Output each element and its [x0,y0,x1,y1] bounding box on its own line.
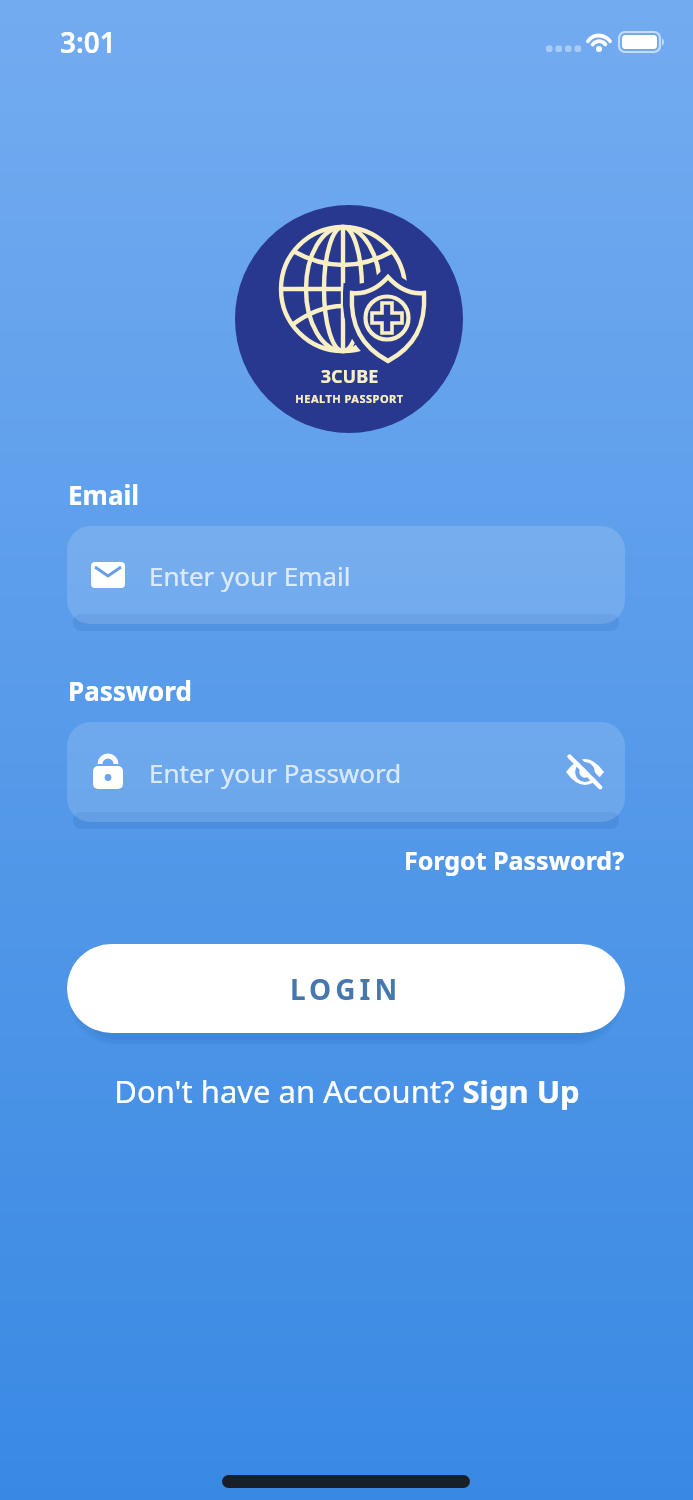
button[interactable]: LOGIN [67,944,625,1033]
staticText: Password [68,673,192,708]
button[interactable]: Don't have an Account? Sign Up [0,1070,693,1112]
staticText: 3CUBE [3,364,693,389]
button[interactable]: Forgot Password? [404,843,625,877]
staticText: LOGIN [290,970,402,1008]
button[interactable]: Enter your Email [67,526,625,624]
button[interactable] [554,741,616,803]
staticText: Enter your Password [149,755,402,790]
button[interactable]: Enter your Password [67,722,625,822]
staticText: HEALTH PASSPORT [3,391,693,406]
staticText: Email [68,477,140,512]
staticText: 3:01 [60,23,116,61]
staticText: Don't have an Account? Sign Up [114,1070,580,1112]
staticText: Enter your Email [149,558,351,593]
